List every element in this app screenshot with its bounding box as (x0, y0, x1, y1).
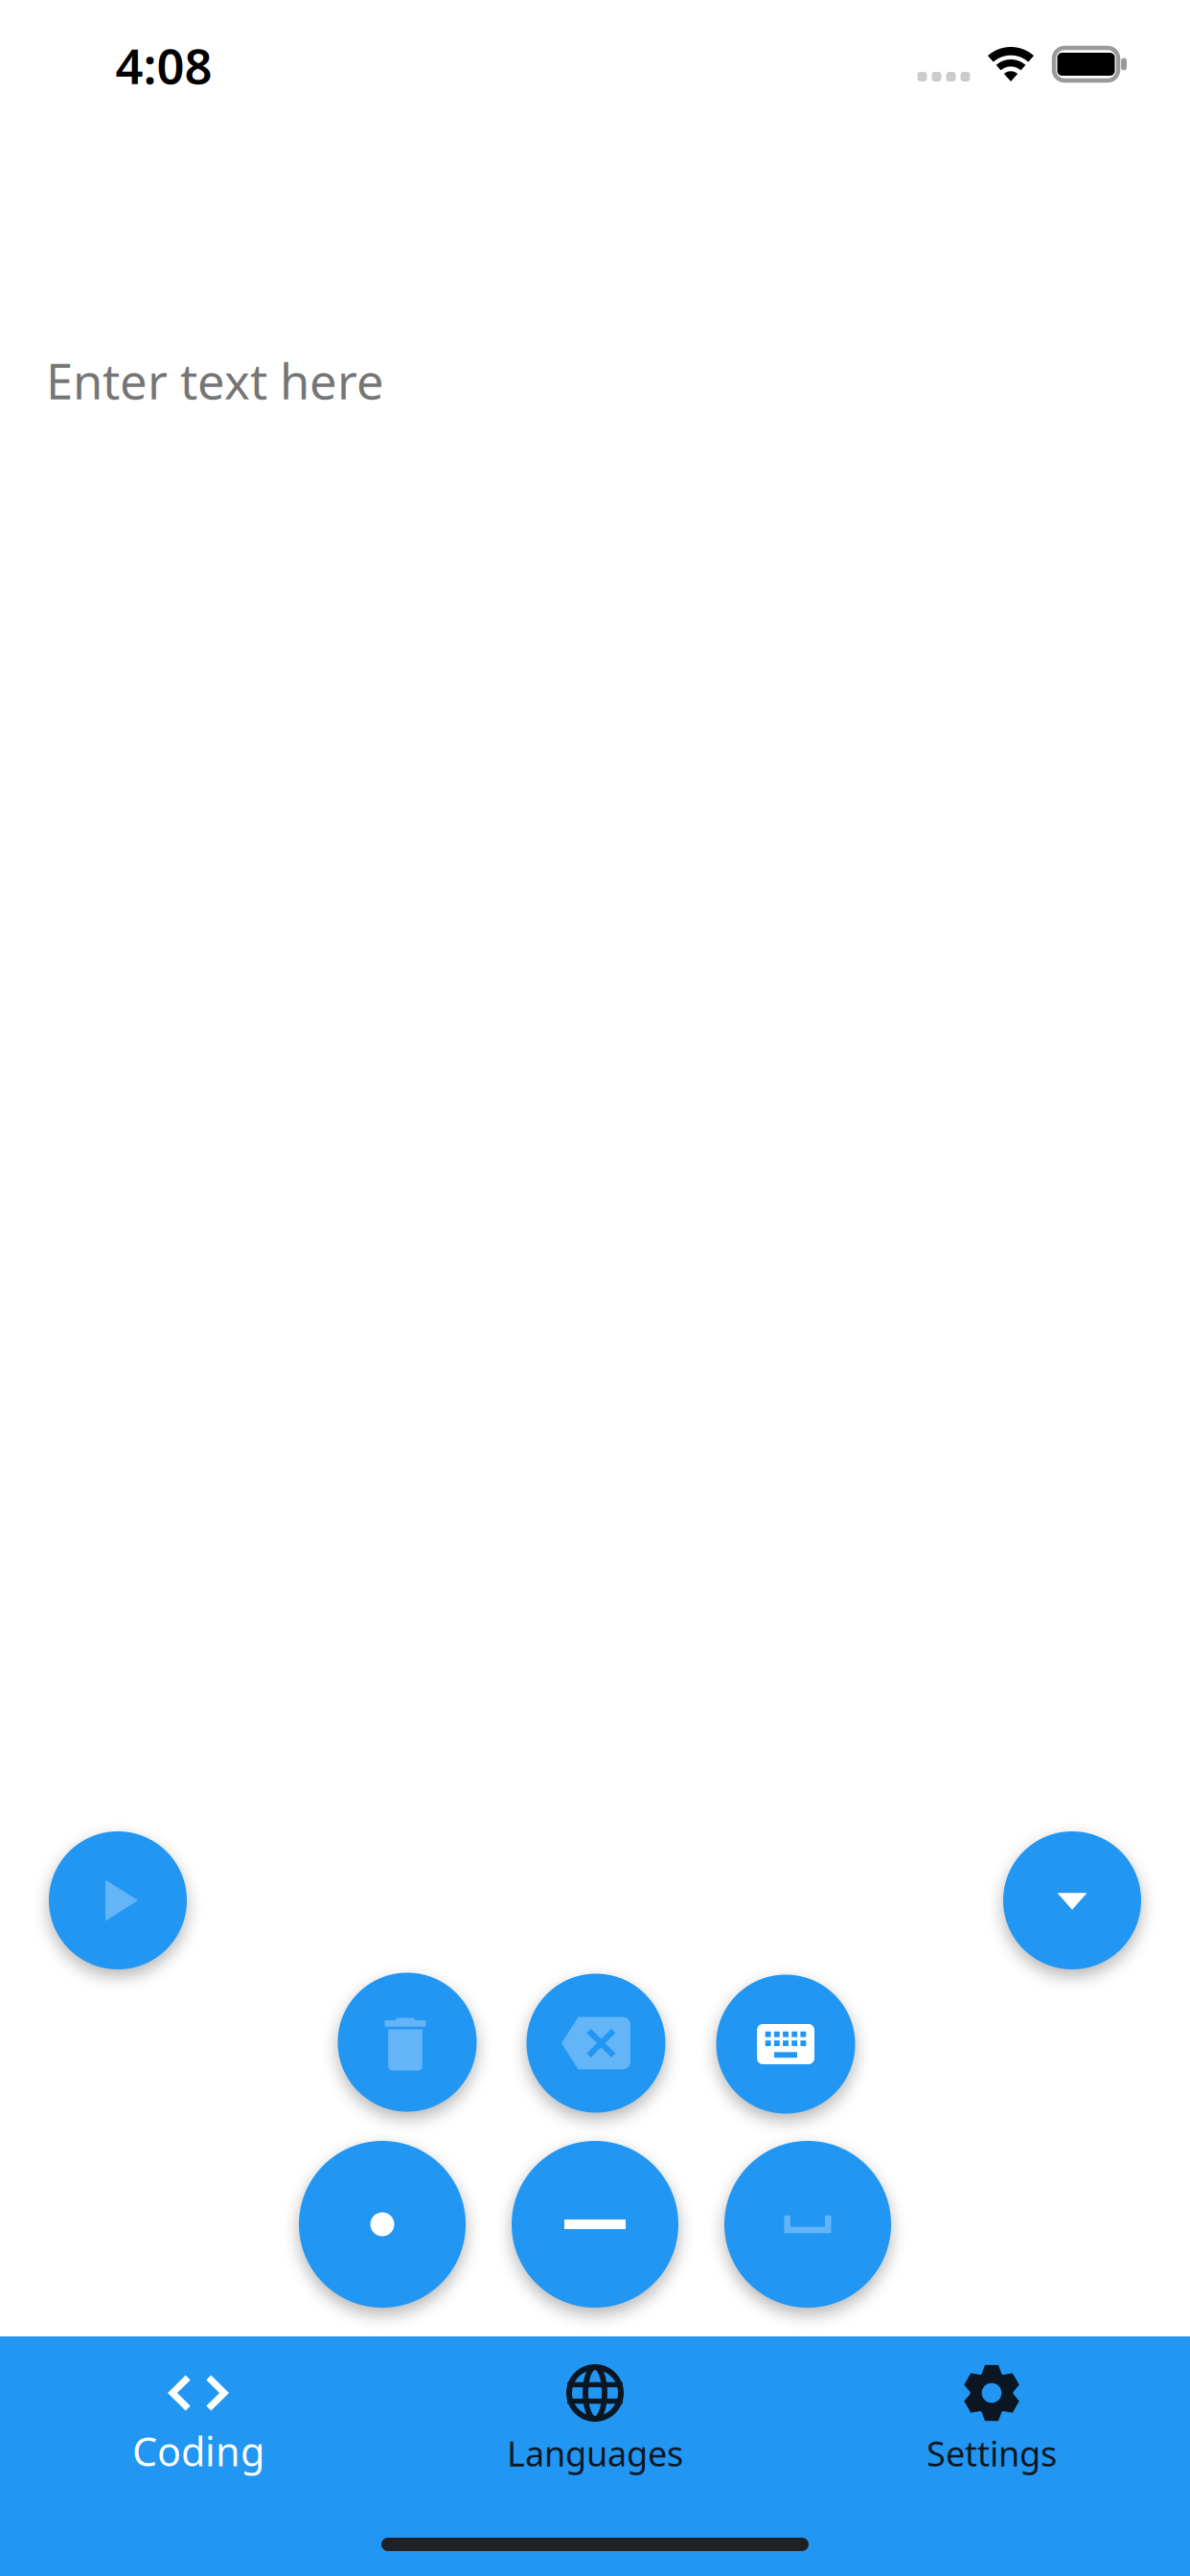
button[interactable]: Languages (397, 2336, 793, 2576)
button[interactable]: Backspace (526, 1974, 665, 2113)
button[interactable]: Show keyboard (716, 1975, 855, 2114)
staticText: Enter text here (46, 348, 384, 413)
button[interactable]: Dot (299, 2141, 466, 2308)
button[interactable]: Play (49, 1831, 187, 1969)
button[interactable]: Settings (793, 2336, 1190, 2576)
staticText: Settings (927, 2430, 1057, 2476)
button[interactable]: Clear text (338, 1973, 477, 2112)
staticText: 4:08 (115, 33, 212, 97)
button[interactable]: Enter text here (46, 328, 1144, 433)
button[interactable]: Coding (0, 2336, 397, 2576)
button[interactable]: Space (724, 2141, 891, 2308)
staticText: Languages (507, 2430, 683, 2476)
button[interactable]: Dash (512, 2141, 678, 2308)
button[interactable]: Hide keyboard (1003, 1831, 1141, 1969)
staticText: Coding (132, 2425, 264, 2477)
